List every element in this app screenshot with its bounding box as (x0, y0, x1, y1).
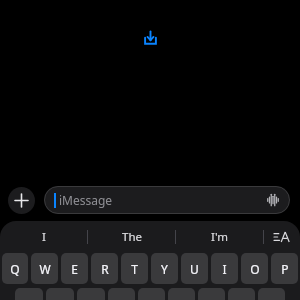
staticText: R (101, 261, 109, 277)
button[interactable] (168, 288, 195, 300)
button[interactable]: Add attachment (8, 187, 35, 214)
staticText: Q (10, 261, 20, 277)
button[interactable] (258, 288, 285, 300)
button[interactable]: U (181, 253, 208, 284)
staticText: W (39, 261, 51, 277)
staticText: I'm (211, 229, 228, 245)
button[interactable]: Save message (139, 26, 161, 48)
staticText: U (190, 261, 199, 277)
staticText: I (42, 229, 46, 245)
button[interactable]: Text formatting (264, 221, 300, 253)
button[interactable]: iMessage (44, 186, 290, 214)
button[interactable] (15, 288, 43, 300)
button[interactable]: I (0, 221, 87, 253)
staticText: T (131, 261, 138, 277)
button[interactable] (77, 288, 105, 300)
button[interactable]: The (88, 221, 175, 253)
button[interactable]: W (31, 253, 58, 284)
staticText: Y (161, 261, 168, 277)
button[interactable]: R (91, 253, 118, 284)
staticText: P (281, 261, 289, 277)
staticText: iMessage (59, 192, 113, 208)
button[interactable] (228, 288, 255, 300)
button[interactable]: Audio message (264, 191, 282, 209)
button[interactable]: O (241, 253, 268, 284)
button[interactable]: I'm (176, 221, 263, 253)
button[interactable] (198, 288, 225, 300)
button[interactable]: P (271, 253, 298, 284)
button[interactable] (46, 288, 74, 300)
button[interactable]: I (211, 253, 238, 284)
staticText: I (222, 261, 227, 277)
staticText: O (250, 261, 260, 277)
button[interactable] (108, 288, 135, 300)
button[interactable]: T (121, 253, 148, 284)
button[interactable] (138, 288, 165, 300)
button[interactable]: Q (2, 253, 28, 284)
staticText: E (71, 261, 78, 277)
button[interactable]: E (61, 253, 88, 284)
staticText: The (122, 229, 142, 245)
button[interactable]: Y (151, 253, 178, 284)
